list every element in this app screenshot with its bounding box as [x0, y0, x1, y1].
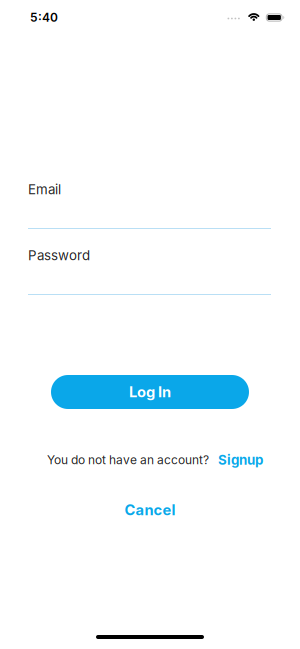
button[interactable]: Signup [218, 452, 263, 468]
button[interactable]: Log In [51, 375, 249, 409]
staticText: Email [28, 182, 61, 197]
staticText: Log In [129, 383, 171, 401]
staticText: You do not have an account? [47, 453, 209, 467]
staticText: Password [28, 248, 90, 263]
staticText: Signup [218, 452, 263, 468]
staticText: 5:40 [30, 10, 58, 25]
button[interactable]: Cancel [124, 503, 175, 517]
staticText: Cancel [124, 501, 175, 519]
button[interactable]: Email [0, 181, 300, 229]
button[interactable]: Password [0, 247, 300, 295]
